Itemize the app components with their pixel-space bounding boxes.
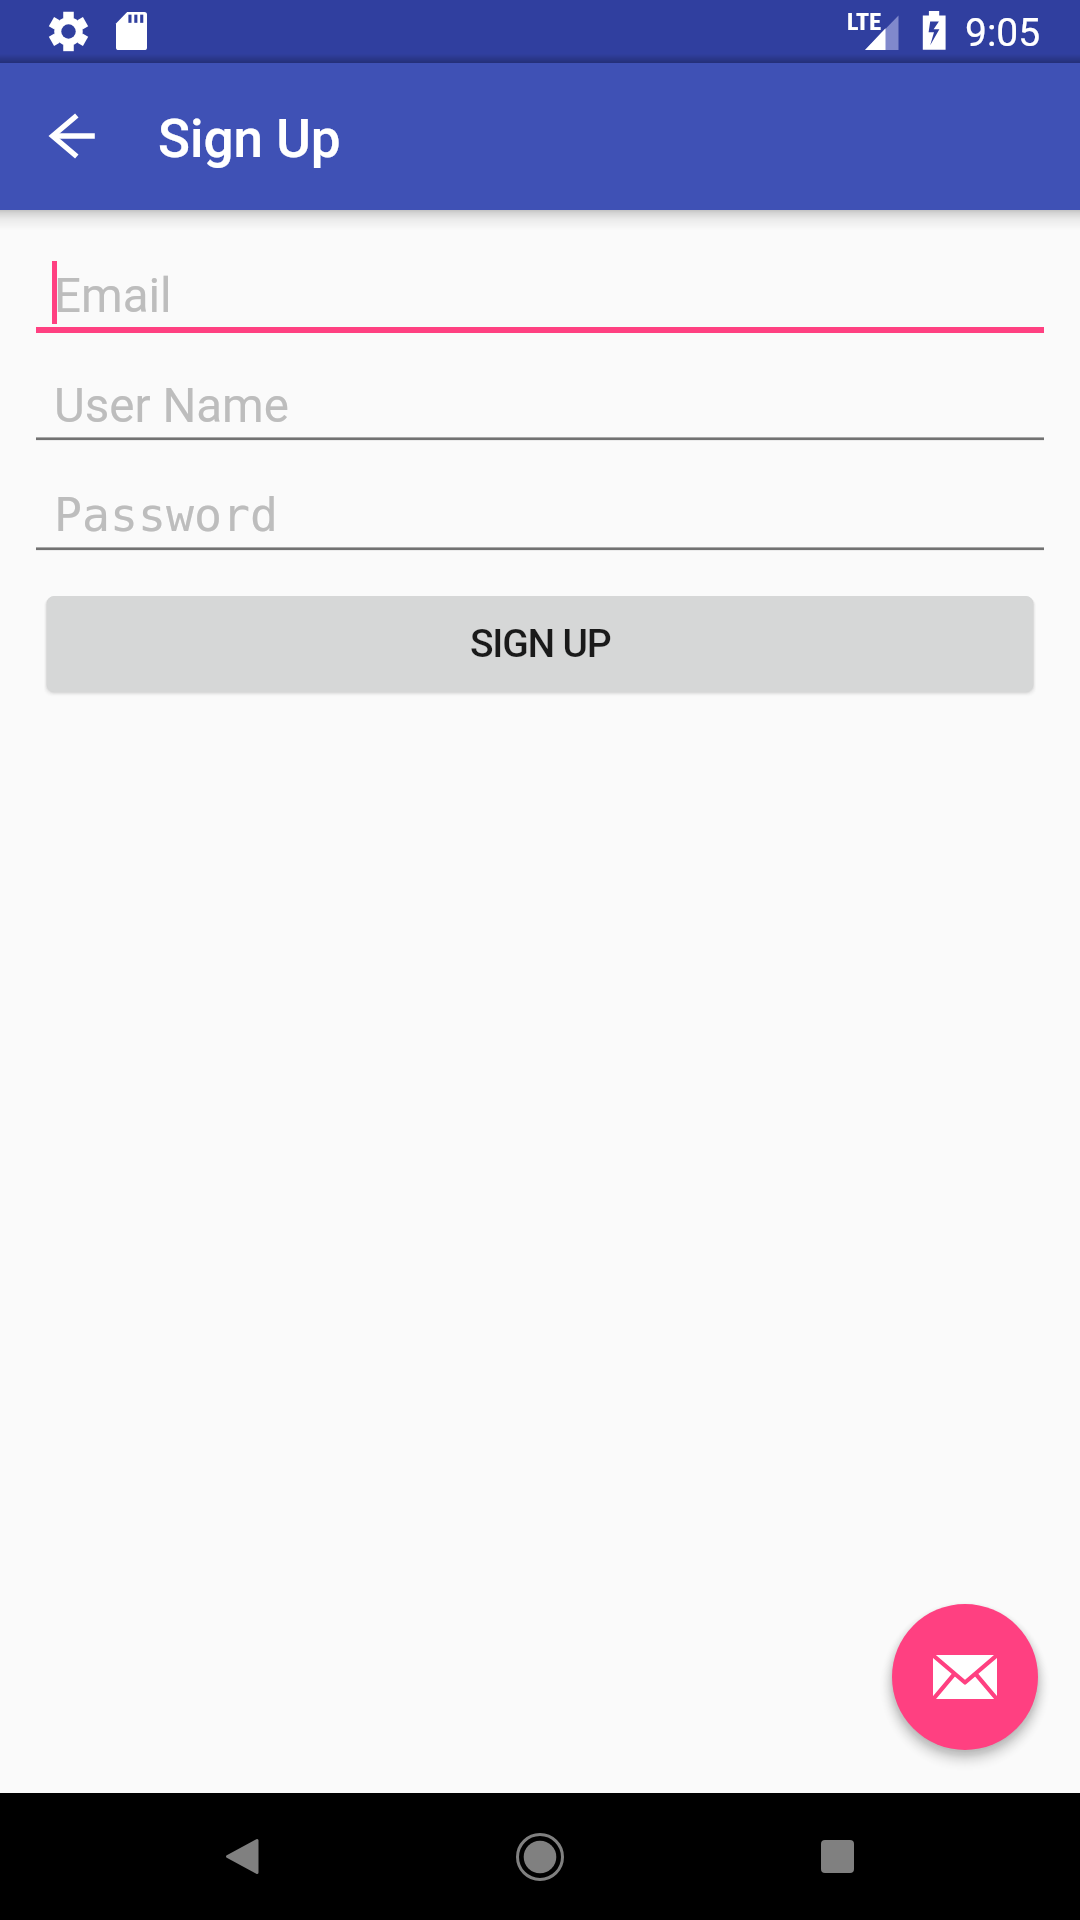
staticText: LTE xyxy=(847,8,881,36)
staticText: Password xyxy=(54,488,278,542)
staticText: 9:05 xyxy=(965,10,1041,56)
button[interactable]: User Name xyxy=(36,351,1044,443)
staticText: User Name xyxy=(54,378,289,434)
button[interactable]: Compose email xyxy=(892,1604,1038,1750)
button[interactable]: Password xyxy=(36,461,1044,553)
button[interactable]: Navigate up xyxy=(10,73,136,199)
staticText: Email xyxy=(54,268,172,324)
button[interactable]: Email xyxy=(36,241,1044,333)
staticText: Sign Up xyxy=(158,108,341,170)
button[interactable]: Home xyxy=(476,1793,603,1920)
button[interactable]: SIGN UP xyxy=(47,596,1033,692)
staticText: SIGN UP xyxy=(470,621,611,667)
button[interactable]: Back xyxy=(178,1793,305,1920)
button[interactable]: Recent apps xyxy=(774,1793,901,1920)
